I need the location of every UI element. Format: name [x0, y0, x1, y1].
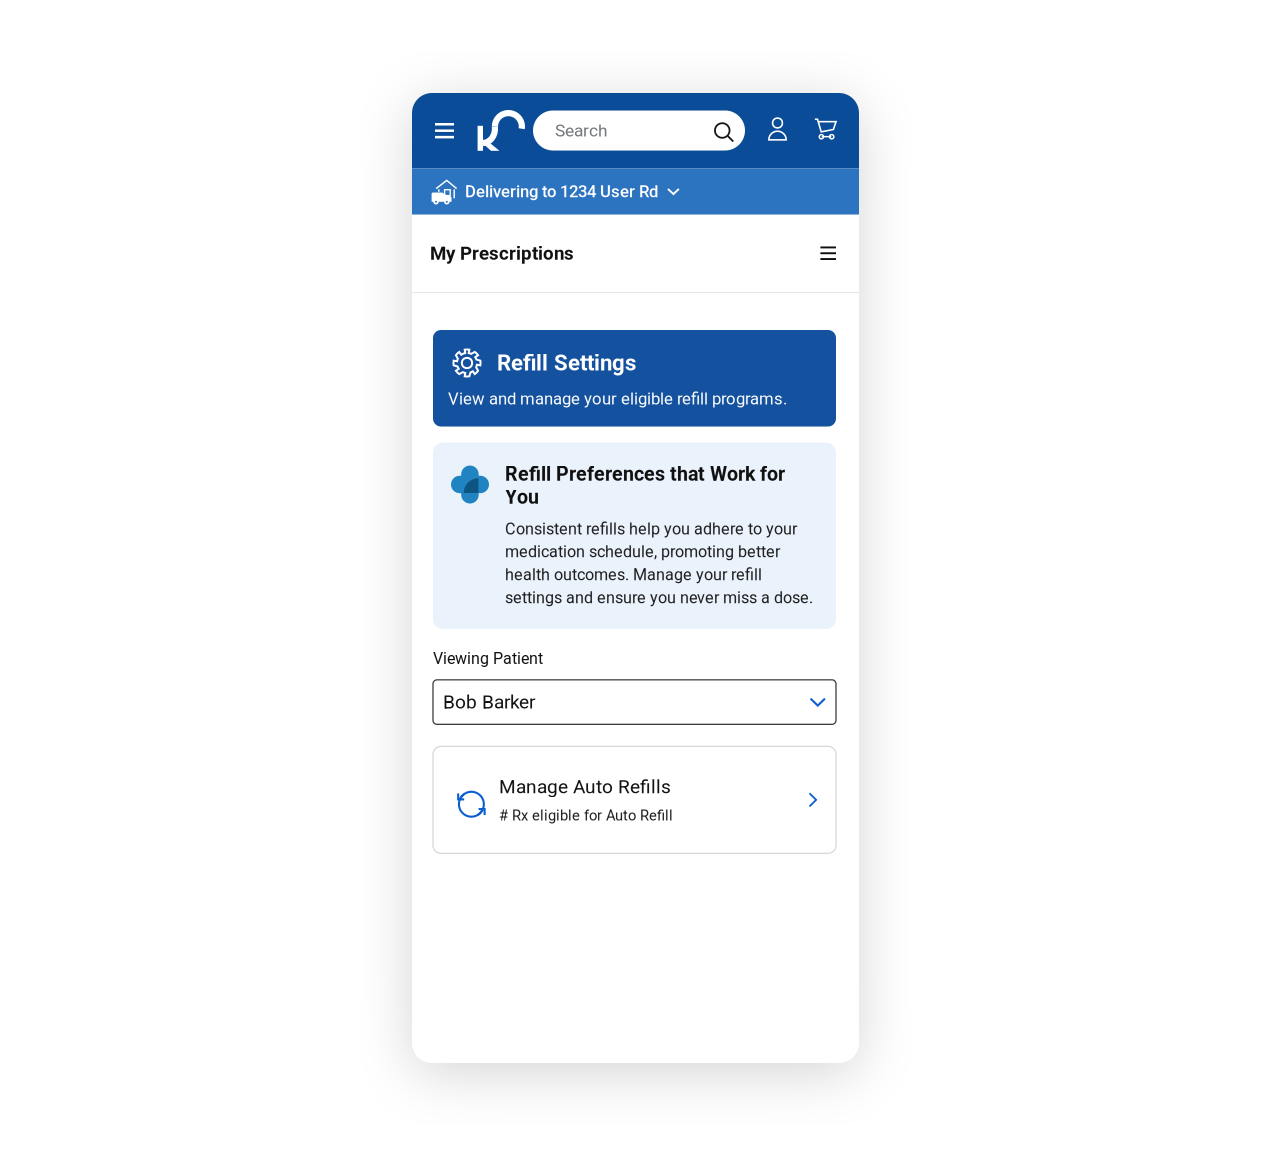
staticText: # Rx eligible for Auto Refill [499, 807, 673, 824]
staticText: Bob Barker [443, 691, 535, 713]
staticText: Refill Preferences that Work for You [505, 462, 785, 508]
button[interactable]: Delivering to 1234 User Rd [412, 168, 859, 214]
staticText: Consistent refills help you adhere to yo… [505, 519, 813, 607]
button[interactable]: Search [533, 110, 745, 150]
staticText: Manage Auto Refills [499, 776, 671, 798]
button[interactable]: Manage Auto Refills [433, 746, 836, 853]
staticText: Viewing Patient [433, 649, 543, 668]
button[interactable]: Account [759, 103, 796, 143]
button[interactable]: List options [811, 237, 845, 269]
button[interactable]: Cart [805, 106, 846, 146]
staticText: Refill Settings [497, 350, 636, 376]
staticText: My Prescriptions [430, 242, 574, 264]
staticText: Delivering to 1234 User Rd [465, 182, 658, 201]
button[interactable]: Menu [426, 114, 463, 147]
staticText: View and manage your eligible refill pro… [448, 389, 787, 408]
staticText: Search [555, 120, 608, 141]
button[interactable]: Bob Barker [433, 680, 836, 724]
button[interactable]: Refill Settings [433, 330, 836, 426]
